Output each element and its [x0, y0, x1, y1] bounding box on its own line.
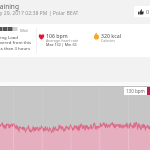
staticText: Mid — [20, 27, 28, 33]
staticText: Training — [0, 2, 19, 11]
staticText: 130 bpm — [126, 88, 145, 94]
staticText: 0 — [146, 8, 150, 15]
staticText: Average heart rate — [46, 38, 79, 43]
staticText: Max 132 | Min 63 — [46, 42, 77, 47]
staticText: 320 kcal — [101, 32, 122, 39]
staticText: 106 bpm — [46, 32, 68, 39]
button[interactable]: Like — [134, 6, 150, 17]
staticText: Training Load — [0, 34, 18, 40]
staticText: Recovered from this — [0, 39, 32, 45]
staticText: Calories — [101, 38, 115, 43]
staticText: in less than 3 hours — [0, 45, 30, 51]
staticText: July 29, 2017 02:38 PM | Polar BEAT — [0, 10, 79, 17]
